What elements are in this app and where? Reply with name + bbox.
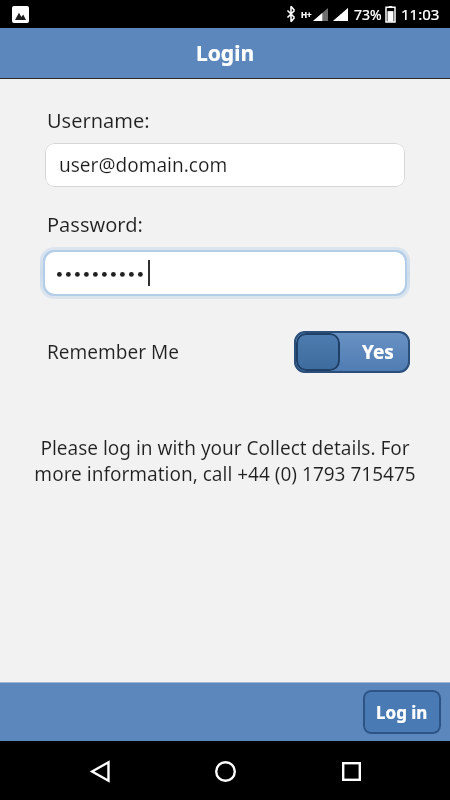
staticText: 73% [354, 5, 382, 24]
staticText: H+ [301, 9, 312, 20]
staticText: Yes [362, 339, 394, 365]
staticText: Login [196, 39, 255, 68]
staticText: Log in [376, 701, 428, 724]
button[interactable]: Log in [363, 690, 441, 734]
staticText: Please log in with your Collect details.… [26, 435, 424, 487]
button[interactable]: Remember Me toggle, Yes [294, 331, 410, 373]
button[interactable]: user@domain.com [45, 143, 405, 187]
button[interactable]: Back [74, 745, 126, 797]
button[interactable]: Recent apps [325, 745, 377, 797]
staticText: 11:03 [401, 4, 440, 24]
button[interactable] [45, 252, 405, 294]
staticText: Username: [47, 107, 150, 134]
staticText: Remember Me [47, 339, 179, 365]
staticText: user@domain.com [59, 152, 228, 178]
staticText: Password: [47, 211, 143, 238]
button[interactable]: Home [199, 745, 251, 797]
